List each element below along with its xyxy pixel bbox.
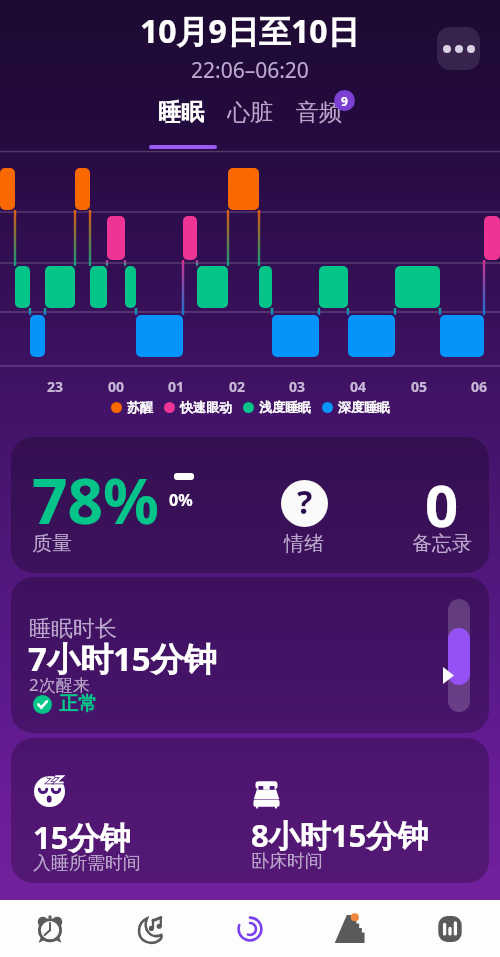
staticText: 10月9日至10日 bbox=[140, 9, 360, 53]
staticText: 06 bbox=[471, 377, 488, 396]
staticText: 0 bbox=[425, 465, 459, 544]
staticText: 心脏 bbox=[227, 98, 273, 127]
staticText: 苏醒 bbox=[127, 399, 153, 415]
staticText: 卧床时间 bbox=[251, 850, 323, 873]
staticText: 正常 bbox=[59, 692, 97, 716]
button[interactable]: Sleep tracking bbox=[200, 900, 300, 957]
button[interactable]: 78% bbox=[11, 437, 489, 573]
staticText: 15分钟 bbox=[33, 816, 131, 858]
staticText: 睡眠时长 bbox=[29, 615, 117, 643]
staticText: 00 bbox=[108, 377, 125, 396]
button[interactable]: 睡眠时长 bbox=[11, 577, 489, 733]
button[interactable]: Alarm bbox=[0, 900, 100, 957]
staticText: 情绪 bbox=[284, 531, 324, 556]
staticText: 备忘录 bbox=[412, 531, 472, 556]
staticText: 02 bbox=[229, 377, 246, 396]
button[interactable]: Trends bbox=[300, 900, 400, 957]
staticText: 浅度睡眠 bbox=[259, 399, 311, 415]
button[interactable]: 心脏 bbox=[219, 95, 281, 130]
staticText: 睡眠 bbox=[158, 98, 204, 127]
staticText: 05 bbox=[411, 377, 428, 396]
button[interactable]: 音频 bbox=[288, 95, 350, 130]
staticText: 03 bbox=[289, 377, 306, 396]
staticText: 0% bbox=[169, 489, 193, 511]
staticText: 8小时15分钟 bbox=[251, 814, 429, 856]
staticText: 7小时15分钟 bbox=[28, 636, 217, 681]
staticText: 78% bbox=[32, 458, 159, 542]
staticText: 01 bbox=[168, 377, 185, 396]
staticText: 22:06–06:20 bbox=[191, 56, 309, 85]
button[interactable]: Sleep sounds bbox=[100, 900, 200, 957]
staticText: 快速眼动 bbox=[180, 399, 232, 415]
button[interactable]: More options bbox=[437, 27, 480, 70]
staticText: 04 bbox=[350, 377, 367, 396]
button[interactable]: 睡眠 bbox=[150, 95, 212, 130]
staticText: 音频 bbox=[296, 98, 342, 127]
staticText: 入睡所需时间 bbox=[33, 852, 141, 875]
staticText: ? bbox=[297, 480, 313, 524]
staticText: 23 bbox=[47, 377, 64, 396]
button[interactable]: 15分钟 bbox=[11, 738, 489, 883]
staticText: 深度睡眠 bbox=[338, 399, 390, 415]
staticText: 质量 bbox=[32, 531, 72, 556]
staticText: 9 bbox=[341, 93, 348, 109]
button[interactable]: Stats bbox=[400, 900, 500, 957]
staticText: 2次醒来 bbox=[29, 673, 90, 696]
